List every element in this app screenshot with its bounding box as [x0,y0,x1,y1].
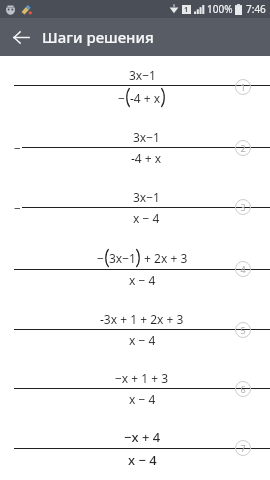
button[interactable]: 3x−1 [0,56,270,118]
staticText: 3x−1 [109,250,136,266]
staticText: -4 + x [131,150,162,166]
button[interactable]: 2 [233,138,253,158]
staticText: − [97,250,104,266]
staticText: 3x−1 [133,129,160,145]
staticText: 100% [207,2,233,16]
staticText: 3x−1 [133,189,160,205]
button[interactable]: − [0,118,270,177]
staticText: 4 [240,263,246,275]
staticText: 1 [240,81,246,93]
staticText: x − 4 [129,332,156,348]
button[interactable]: 6 [233,379,253,399]
button[interactable]: − [0,237,270,299]
staticText: − [14,200,21,216]
button[interactable]: 5 [233,320,253,340]
staticText: -3x + 1 + 2x + 3 [100,311,184,327]
staticText: 5 [240,324,246,336]
staticText: 2 [240,142,246,154]
staticText: x − 4 [133,210,160,226]
staticText: Шаги решения [42,27,154,47]
staticText: − [118,90,125,106]
button[interactable]: −x + 1 + 3 [0,359,270,418]
button[interactable]: −x + 4 [0,418,270,478]
staticText: −x + 1 + 3 [115,370,169,386]
staticText: 7 [240,442,246,454]
staticText: -4 + x [130,90,161,106]
staticText: x − 4 [129,391,156,407]
button[interactable]: -3x + 1 + 2x + 3 [0,299,270,359]
button[interactable]: Back [4,20,38,54]
staticText: x − 4 [128,451,157,469]
button[interactable]: 7 [233,438,253,458]
staticText: 3 [240,201,246,213]
staticText: 3x−1 [129,67,156,83]
staticText: x − 4 [129,272,156,288]
button[interactable]: 1 [233,77,253,97]
button[interactable]: 4 [233,259,253,279]
staticText: −x + 4 [124,428,161,446]
staticText: 6 [240,383,246,395]
button[interactable]: − [0,177,270,237]
staticText: 1 [184,5,189,14]
button[interactable]: 3 [233,197,253,217]
staticText: + 2x + 3 [141,250,188,266]
staticText: 7:46 [246,2,266,16]
staticText: − [14,140,21,156]
